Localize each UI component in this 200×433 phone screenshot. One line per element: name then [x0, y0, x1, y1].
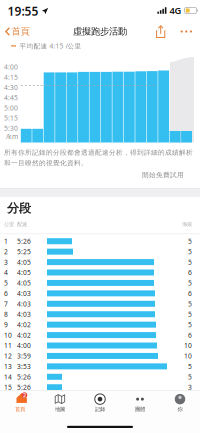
- button[interactable]: 9: [0, 319, 200, 330]
- staticText: 15: [4, 383, 12, 392]
- staticText: 1: [4, 237, 8, 246]
- staticText: 5:30: [4, 124, 18, 133]
- button[interactable]: 8: [0, 309, 200, 319]
- button[interactable]: 7: [0, 299, 200, 309]
- staticText: 4G: [170, 4, 182, 17]
- staticText: 公里: [4, 221, 14, 228]
- staticText: 分段: [7, 201, 31, 216]
- staticText: /km: [6, 132, 18, 141]
- button[interactable]: 地圖: [40, 391, 80, 414]
- staticText: 10: [4, 331, 12, 340]
- button[interactable]: 11: [0, 340, 200, 351]
- staticText: 5: [188, 258, 192, 266]
- staticText: 4:02: [17, 331, 31, 340]
- staticText: 3: [4, 258, 8, 266]
- staticText: 記錄: [95, 406, 105, 412]
- button[interactable]: 首頁: [1, 22, 34, 41]
- staticText: 海拔: [182, 221, 192, 228]
- staticText: 9: [4, 320, 8, 329]
- staticText: 6: [188, 331, 192, 340]
- button[interactable]: 14: [0, 372, 200, 382]
- staticText: 4:05: [17, 278, 31, 287]
- staticText: 5: [188, 299, 192, 308]
- staticText: 首頁: [15, 406, 25, 412]
- staticText: 3:59: [17, 351, 31, 360]
- staticText: 5: [188, 310, 192, 319]
- staticText: 5: [188, 372, 192, 381]
- staticText: 配速: [17, 221, 27, 228]
- staticText: 12: [4, 351, 12, 360]
- staticText: 4:05: [17, 258, 31, 266]
- staticText: 4:45: [4, 93, 18, 102]
- button[interactable]: 13: [0, 361, 200, 372]
- staticText: 所有你所記錄的分段都會透過配速分析，得到詳細的成績解析: [4, 148, 193, 157]
- button[interactable]: Share: [152, 22, 176, 41]
- staticText: 2: [23, 392, 26, 399]
- button[interactable]: 12: [0, 351, 200, 361]
- staticText: 6: [188, 289, 192, 298]
- staticText: 3: [188, 383, 192, 392]
- staticText: 4:03: [17, 310, 31, 319]
- staticText: 開始免費試用: [142, 171, 184, 179]
- staticText: 5: [188, 247, 192, 256]
- button[interactable]: 2: [0, 246, 200, 257]
- staticText: 8: [4, 310, 8, 319]
- staticText: 4:00: [17, 341, 31, 350]
- button[interactable]: 4: [0, 267, 200, 278]
- staticText: 和一目瞭然的視覺化資料。: [4, 159, 88, 167]
- button[interactable]: 15: [0, 382, 200, 392]
- staticText: 5: [188, 278, 192, 287]
- staticText: 平均配速 4:15 /公里: [19, 41, 81, 50]
- staticText: 團體: [135, 406, 145, 412]
- button[interactable]: 你: [160, 391, 200, 414]
- staticText: 6: [188, 268, 192, 277]
- staticText: 5: [188, 362, 192, 371]
- staticText: 5: [4, 278, 8, 287]
- staticText: 5: [188, 320, 192, 329]
- staticText: 2: [4, 247, 8, 256]
- button[interactable]: 6: [0, 288, 200, 298]
- staticText: 4:03: [17, 299, 31, 308]
- staticText: 4:15: [4, 73, 18, 82]
- staticText: 5:26: [17, 372, 31, 381]
- staticText: 13: [4, 362, 12, 371]
- staticText: 5:26: [17, 383, 31, 392]
- staticText: 4:02: [17, 320, 31, 329]
- staticText: 4:00: [4, 63, 18, 71]
- staticText: 4:30: [4, 83, 18, 92]
- staticText: 虛擬跑步活動: [73, 26, 127, 37]
- button[interactable]: 3: [0, 257, 200, 267]
- staticText: 6: [4, 289, 8, 298]
- staticText: 地圖: [55, 406, 65, 412]
- button[interactable]: 1: [0, 236, 200, 246]
- button[interactable]: 10: [0, 330, 200, 340]
- staticText: 11: [4, 341, 12, 350]
- staticText: 10: [184, 351, 192, 360]
- staticText: 5:15: [4, 114, 18, 122]
- staticText: 4: [4, 268, 8, 277]
- staticText: 4:05: [17, 268, 31, 277]
- staticText: 7: [4, 299, 8, 308]
- button[interactable]: 開始免費試用: [142, 171, 192, 179]
- button[interactable]: 5: [0, 278, 200, 288]
- staticText: 3:53: [17, 362, 31, 371]
- button[interactable]: More: [176, 22, 197, 41]
- staticText: 首頁: [12, 26, 30, 37]
- staticText: 19:55: [8, 3, 39, 19]
- staticText: 你: [177, 406, 182, 412]
- staticText: 5:25: [17, 247, 31, 256]
- button[interactable]: 記錄: [80, 391, 120, 414]
- staticText: 5:00: [4, 103, 18, 112]
- staticText: 5:26: [17, 237, 31, 246]
- staticText: 14: [4, 372, 12, 381]
- staticText: 4:03: [17, 289, 31, 298]
- staticText: 10: [184, 341, 192, 350]
- button[interactable]: 2: [0, 391, 40, 414]
- staticText: 5: [188, 237, 192, 246]
- button[interactable]: 團體: [120, 391, 160, 414]
